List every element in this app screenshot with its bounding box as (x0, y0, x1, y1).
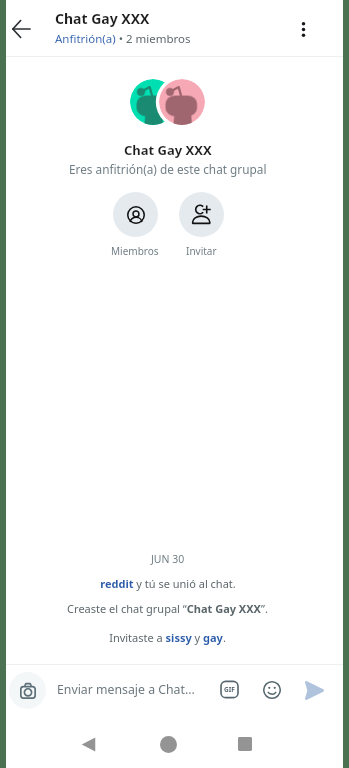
staticText: Miembros (111, 244, 159, 258)
staticText: Eres anfitrión(a) de este chat grupal (69, 161, 267, 177)
button[interactable]: Miembros (111, 192, 159, 258)
staticText: Chat Gay XXX (55, 9, 150, 28)
button[interactable]: Back (3, 11, 39, 47)
staticText: reddit y tú se unió al chat. (100, 576, 236, 591)
button[interactable]: Send (299, 675, 329, 705)
staticText: Invitaste a sissy y gay. (109, 630, 226, 645)
staticText: JUN 30 (151, 552, 185, 566)
staticText: Invitar (186, 244, 217, 258)
staticText: Creaste el chat grupal “Chat Gay XXX”. (67, 601, 268, 616)
staticText: Anfitrión(a) • 2 miembros (55, 31, 191, 47)
button[interactable]: More options (283, 9, 323, 49)
button[interactable]: Home (150, 726, 186, 762)
button[interactable]: GIF (214, 674, 244, 704)
button[interactable]: Emoji (257, 675, 287, 705)
staticText: Enviar mensaje a Chat... (57, 681, 195, 698)
button[interactable]: Camera (9, 672, 46, 709)
staticText: Chat Gay XXX (124, 141, 212, 159)
button[interactable]: Invitar (179, 192, 224, 258)
staticText: GIF (224, 685, 235, 694)
button[interactable]: Recents (227, 726, 263, 762)
button[interactable]: Back (70, 726, 106, 762)
